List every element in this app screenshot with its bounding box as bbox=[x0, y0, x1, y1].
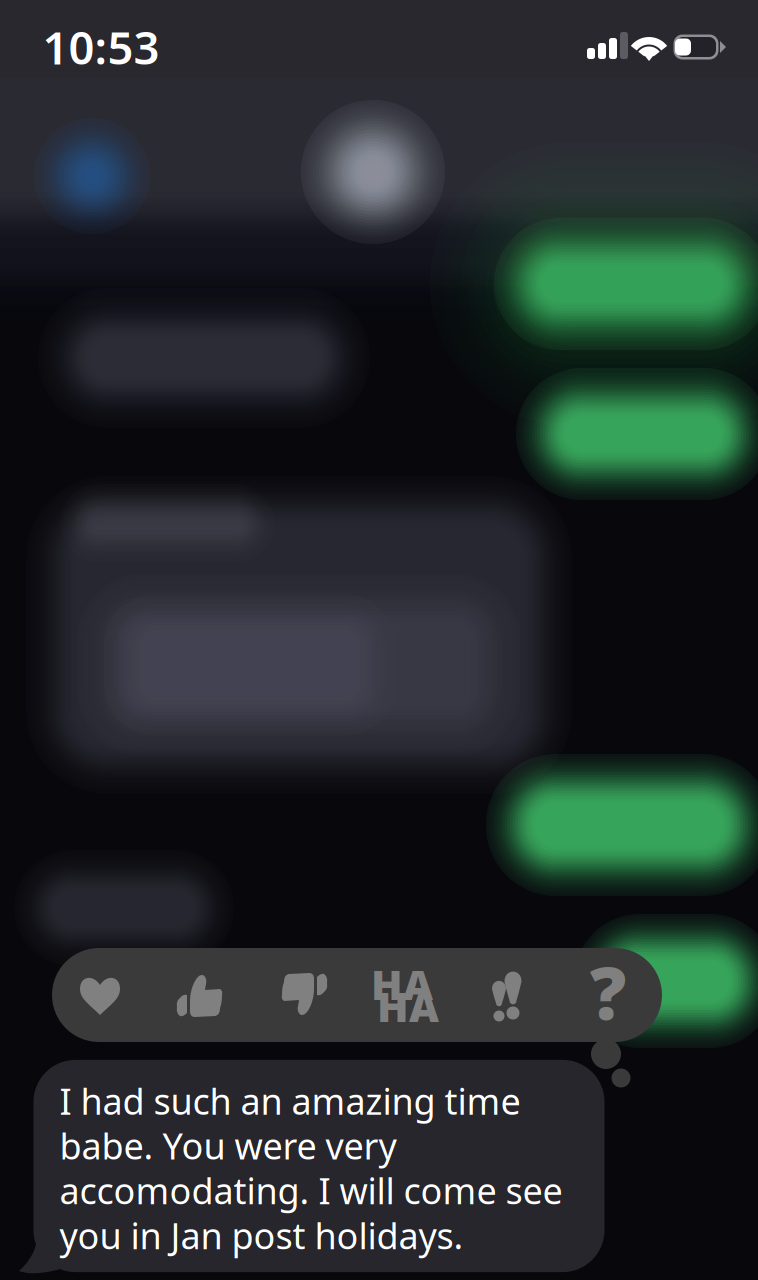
button[interactable]: Love bbox=[0, 0, 758, 1280]
button[interactable]: Thumbs down bbox=[0, 0, 758, 1280]
button[interactable]: I had such an amazing time babe. You wer… bbox=[33, 1060, 604, 1272]
staticText: 10:53 bbox=[42, 17, 159, 77]
button[interactable]: Exclamation bbox=[0, 0, 758, 1280]
button[interactable]: Haha bbox=[0, 0, 758, 1280]
staticText: HA bbox=[371, 957, 433, 1011]
staticText: HA bbox=[377, 979, 439, 1033]
staticText: I had such an amazing time babe. You wer… bbox=[59, 1077, 562, 1259]
staticText: ? bbox=[590, 944, 626, 1040]
button[interactable]: Question mark bbox=[0, 0, 758, 1280]
button[interactable]: Thumbs up bbox=[0, 0, 758, 1280]
